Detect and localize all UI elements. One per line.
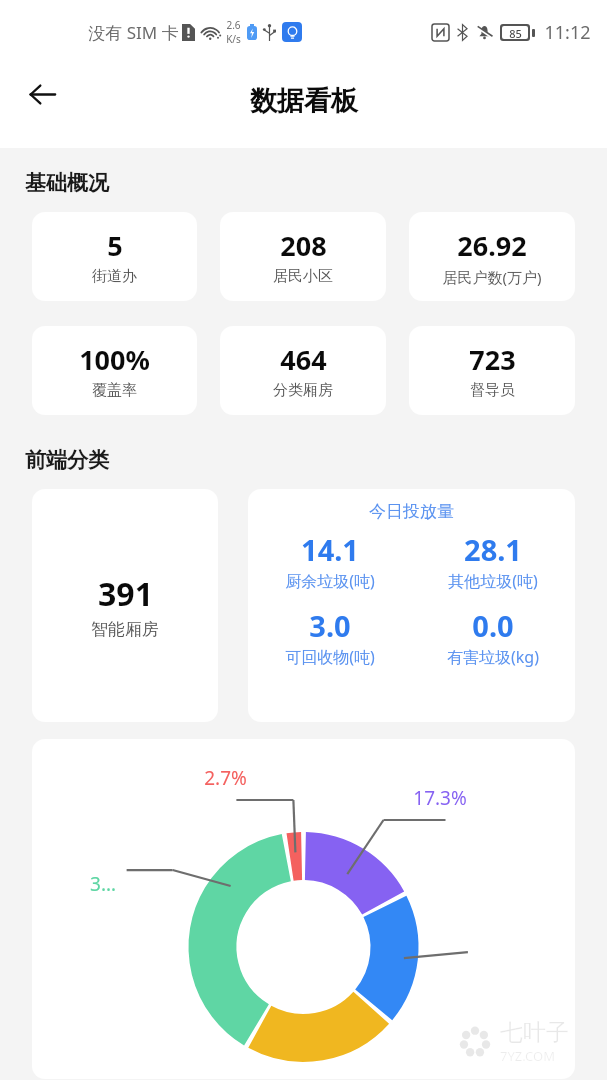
button[interactable]: 208 [220, 212, 386, 301]
staticText: 7YZ.COM [500, 1047, 555, 1065]
staticText: 督导员 [470, 381, 515, 400]
staticText: 11:12 [544, 20, 591, 45]
staticText: 其他垃圾(吨) [448, 570, 538, 592]
button[interactable]: 464 [220, 326, 386, 415]
button[interactable]: 100% [32, 326, 197, 415]
staticText: 85 [509, 26, 522, 39]
staticText: 723 [469, 341, 516, 378]
staticText: 七叶子 [500, 1018, 569, 1047]
staticText: 3.0 [309, 606, 351, 645]
staticText: 基础概况 [25, 170, 109, 196]
staticText: 464 [280, 341, 327, 378]
staticText: 17.3% [413, 785, 467, 811]
staticText: 0.0 [472, 606, 514, 645]
button[interactable]: 26.92 [409, 212, 575, 301]
staticText: 居民小区 [273, 267, 333, 286]
staticText: 智能厢房 [91, 619, 159, 640]
staticText: 391 [98, 572, 153, 616]
staticText: 2.6 [226, 18, 241, 32]
staticText: 14.1 [301, 530, 359, 569]
staticText: 5 [107, 227, 123, 264]
staticText: 3… [90, 871, 116, 897]
staticText: 分类厢房 [273, 381, 333, 400]
button[interactable]: 723 [409, 326, 575, 415]
button[interactable]: 今日投放量 [248, 489, 575, 722]
staticText: 前端分类 [25, 447, 109, 473]
button[interactable]: 391 [32, 489, 218, 722]
staticText: 今日投放量 [369, 501, 454, 522]
staticText: 街道办 [92, 267, 137, 286]
staticText: 2.7% [204, 765, 247, 791]
staticText: 数据看板 [250, 84, 358, 118]
staticText: 居民户数(万户) [442, 267, 542, 287]
staticText: 26.92 [457, 227, 527, 264]
staticText: 28.1 [464, 530, 522, 569]
staticText: 208 [280, 227, 327, 264]
button[interactable]: 返回 [14, 66, 70, 122]
staticText: 覆盖率 [92, 381, 137, 400]
staticText: 有害垃圾(kg) [447, 646, 539, 668]
staticText: 厨余垃圾(吨) [285, 570, 375, 592]
staticText: 可回收物(吨) [285, 646, 375, 668]
button[interactable]: 5 [32, 212, 197, 301]
staticText: 100% [79, 341, 150, 378]
staticText: 没有 SIM 卡 [88, 21, 179, 44]
staticText: K/s [226, 32, 241, 46]
